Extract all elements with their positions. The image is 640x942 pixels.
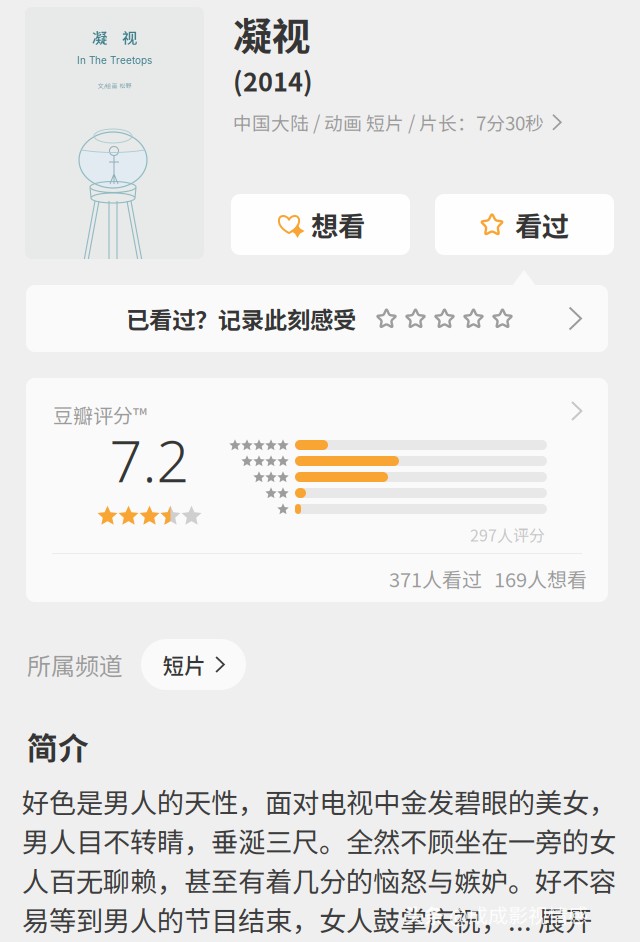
staticText: 想看	[311, 205, 365, 244]
button[interactable]: 中国大陆 / 动画 短片 / 片长：7分30秒	[233, 109, 561, 136]
staticText: 文/绘画 松野	[97, 81, 131, 90]
staticText: 短片	[163, 649, 205, 680]
button[interactable]: 短片	[141, 639, 246, 690]
staticText: 中国大陆 / 动画 短片 / 片长：7分30秒	[233, 109, 544, 136]
staticText: 297人评分	[470, 523, 545, 546]
button[interactable]: 已看过？记录此刻感受	[26, 285, 608, 352]
staticText: 好色是男人的天性，面对电视中金发碧眼的美女，男人目不转睛，垂涎三尺。全然不顾坐在…	[22, 781, 616, 939]
staticText: 凝视	[233, 6, 311, 62]
staticText: 所属频道	[27, 647, 123, 682]
staticText: @成成影视情感	[449, 900, 588, 929]
staticText: In The Treetops	[77, 54, 152, 66]
staticText: (2014)	[233, 62, 313, 99]
staticText: 7.2	[109, 421, 189, 499]
staticText: 371人看过 169人想看	[389, 564, 587, 593]
staticText: 已看过？记录此刻感受	[126, 302, 356, 335]
button[interactable]: 看过	[435, 194, 614, 255]
staticText: 看过	[515, 205, 569, 244]
staticText: 凝 视	[92, 26, 137, 48]
staticText: 简介	[27, 724, 89, 768]
button[interactable]: 想看	[231, 194, 410, 255]
staticText: 豆瓣评分™	[53, 400, 147, 429]
staticText: 头条	[404, 900, 444, 929]
